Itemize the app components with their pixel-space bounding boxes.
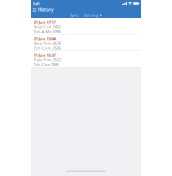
staticText: 21 Jun 13:04 — [33, 36, 55, 41]
button[interactable]: 11 Jun 15:37 — [31, 51, 141, 67]
staticText: Tch-A-Mx 9786 — [33, 29, 60, 33]
staticText: Setting ▾ — [83, 13, 101, 17]
button[interactable]: 21 Jun 17:17 — [31, 18, 141, 34]
staticText: 11 Jun 15:37 — [33, 53, 55, 57]
button[interactable]: Sync — [67, 12, 81, 18]
button[interactable]: Menu — [32, 8, 36, 12]
staticText: 21 Jun 17:17 — [33, 20, 55, 24]
staticText: Verp Frm 4678 — [33, 41, 60, 45]
staticText: Tch-Com 2536 — [33, 45, 60, 50]
button[interactable]: 21 Jun 13:04 — [31, 34, 141, 51]
staticText: Sync — [69, 13, 78, 17]
staticText: Past Frm 3572 — [33, 57, 60, 62]
staticText: History — [38, 7, 53, 12]
staticText: 9:41 — [32, 1, 39, 6]
button[interactable]: Setting ▾ — [81, 12, 104, 18]
staticText: Sngl Crd 7452 — [33, 24, 60, 29]
staticText: Tch-Cisa 7586 — [33, 62, 58, 66]
